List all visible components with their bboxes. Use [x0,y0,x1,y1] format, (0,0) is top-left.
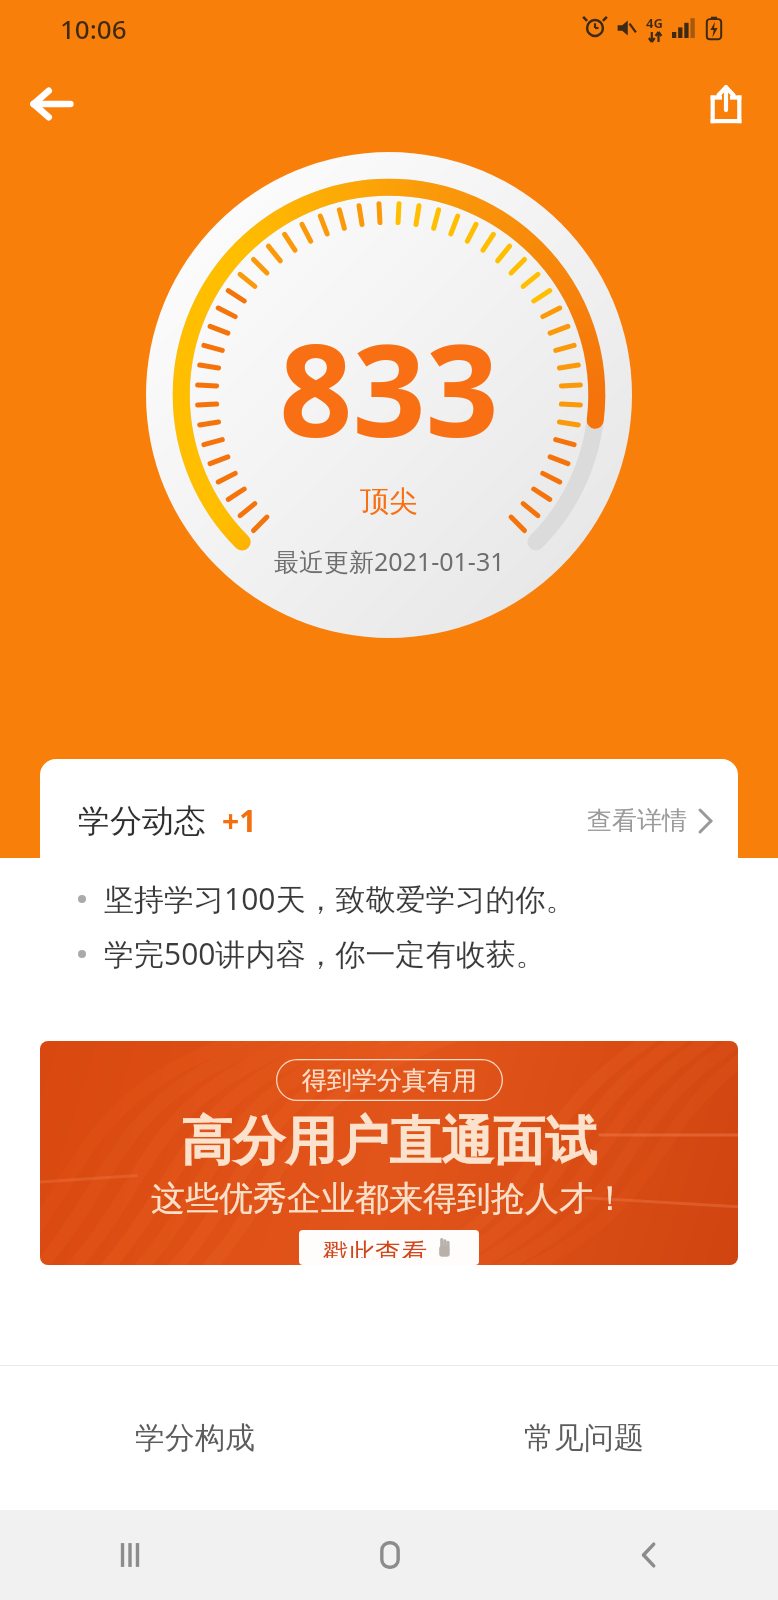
staticText: 常见问题 [524,1419,644,1457]
staticText: 高分用户直通面试 [181,1109,597,1175]
button[interactable]: 戳此查看 [299,1230,479,1265]
button[interactable]: Share [694,72,758,136]
staticText: 学分构成 [135,1419,255,1457]
button[interactable]: Home [260,1510,519,1600]
staticText: 833 [279,300,499,474]
staticText: 查看详情 [587,805,687,836]
button[interactable]: Back [519,1510,778,1600]
button[interactable]: Recents [0,1510,260,1600]
staticText: 最近更新2021-01-31 [274,544,505,578]
button[interactable]: Back [18,70,86,138]
button[interactable]: 学分动态 [40,759,738,1008]
staticText: 戳此查看 [323,1237,427,1258]
button[interactable]: 学分构成 [0,1366,389,1510]
staticText: 坚持学习100天，致敬爱学习的你。 [104,878,576,919]
staticText: 4G [646,14,663,32]
staticText: 得到学分真有用 [302,1065,477,1096]
staticText: +1 [222,800,257,841]
staticText: 学分动态 [78,801,206,841]
button[interactable]: 常见问题 [389,1366,778,1510]
staticText: 这些优秀企业都来得到抢人才！ [151,1177,627,1220]
button[interactable]: 得到学分真有用 [40,1041,738,1265]
button[interactable]: 查看详情 [583,799,716,842]
staticText: 学完500讲内容，你一定有收获。 [104,933,546,974]
staticText: 10:06 [60,11,127,46]
staticText: 顶尖 [360,483,418,520]
